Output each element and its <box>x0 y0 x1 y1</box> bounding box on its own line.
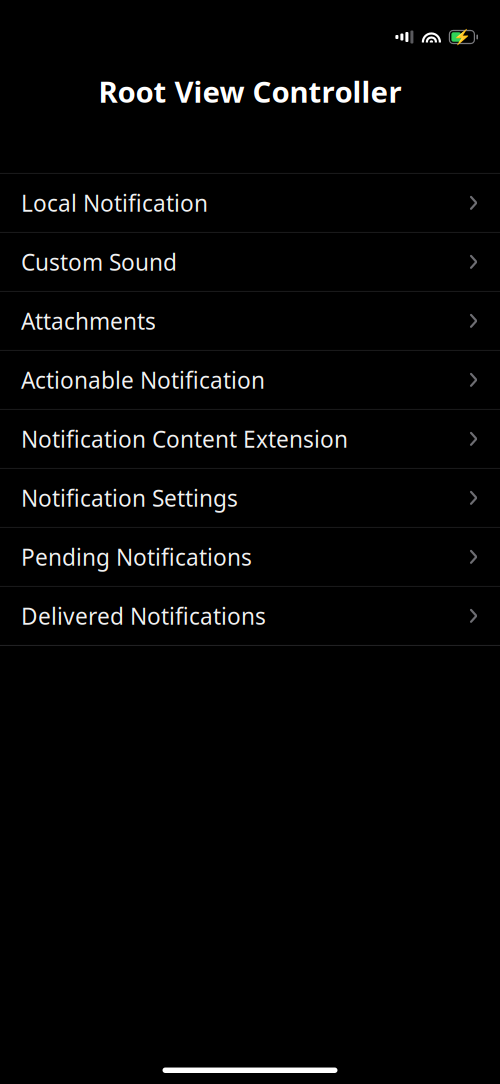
staticText: Actionable Notification <box>21 365 265 395</box>
staticText: Notification Settings <box>21 483 238 513</box>
button[interactable]: Custom Sound <box>0 233 500 291</box>
staticText: Delivered Notifications <box>21 601 266 631</box>
button[interactable]: Delivered Notifications <box>0 587 500 645</box>
staticText: Notification Content Extension <box>21 424 348 454</box>
staticText: Pending Notifications <box>21 542 252 572</box>
button[interactable]: Notification Settings <box>0 469 500 527</box>
staticText: ⚡ <box>453 29 471 45</box>
staticText: Root View Controller <box>98 72 401 111</box>
staticText: Attachments <box>21 306 156 336</box>
button[interactable]: Pending Notifications <box>0 528 500 586</box>
staticText: Local Notification <box>21 188 208 218</box>
button[interactable]: Actionable Notification <box>0 351 500 409</box>
button[interactable]: Notification Content Extension <box>0 410 500 468</box>
button[interactable]: Local Notification <box>0 174 500 232</box>
button[interactable]: Attachments <box>0 292 500 350</box>
staticText: Custom Sound <box>21 247 177 277</box>
